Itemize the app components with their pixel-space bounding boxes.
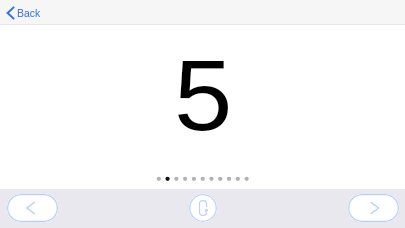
button[interactable]: Previous xyxy=(7,194,58,222)
staticText: 5 xyxy=(174,39,233,150)
button[interactable]: Next xyxy=(348,194,399,222)
button[interactable]: Back xyxy=(3,1,45,23)
staticText: Back xyxy=(17,8,41,20)
button[interactable]: Reset xyxy=(189,194,217,222)
